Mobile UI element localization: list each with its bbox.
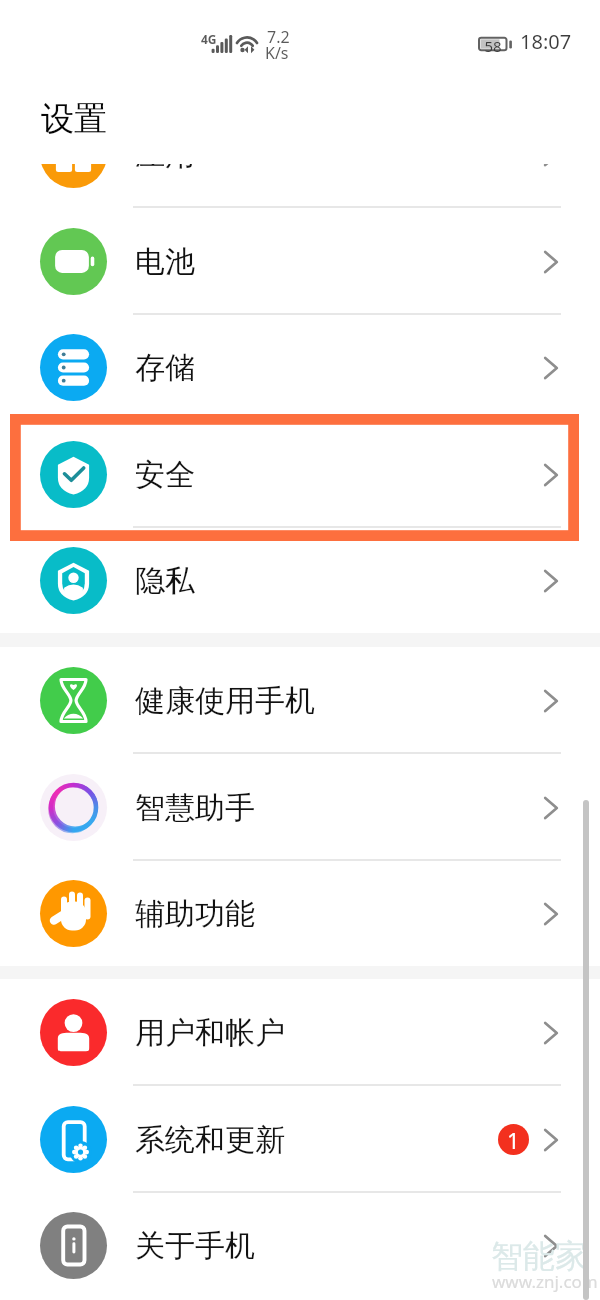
- staticText: 系统和更新: [135, 1121, 285, 1159]
- staticText: www.znj.com: [492, 1270, 598, 1293]
- staticText: 应用: [135, 164, 195, 174]
- other: 智慧助手: [541, 794, 565, 822]
- button[interactable]: 安全: [0, 421, 600, 528]
- other: 电池: [541, 248, 565, 276]
- staticText: 隐私: [135, 562, 195, 600]
- button[interactable]: 健康使用手机: [0, 647, 600, 754]
- staticText: 辅助功能: [135, 895, 255, 933]
- staticText: 智能家: [491, 1236, 587, 1276]
- other: 辅助功能: [541, 900, 565, 928]
- button[interactable]: 关于手机: [0, 1192, 600, 1299]
- staticText: 4G: [201, 31, 217, 47]
- staticText: 1: [507, 1125, 520, 1155]
- button[interactable]: 辅助功能: [0, 860, 600, 966]
- staticText: 存储: [135, 349, 195, 387]
- staticText: 关于手机: [135, 1227, 255, 1265]
- staticText: K/s: [265, 42, 289, 64]
- staticText: 用户和帐户: [135, 1014, 285, 1052]
- staticText: 18:07: [520, 28, 572, 55]
- button[interactable]: 隐私: [0, 527, 600, 633]
- other: 应用: [541, 164, 565, 169]
- button[interactable]: 用户和帐户: [0, 979, 600, 1086]
- button[interactable]: 应用: [0, 164, 600, 208]
- other: 健康使用手机: [541, 687, 565, 715]
- button[interactable]: 智慧助手: [0, 754, 600, 861]
- staticText: 7.2: [267, 26, 290, 48]
- button[interactable]: 存储: [0, 314, 600, 421]
- staticText: 智慧助手: [135, 789, 255, 827]
- other: 存储: [541, 354, 565, 382]
- other: 安全: [541, 461, 565, 489]
- button[interactable]: 电池: [0, 208, 600, 315]
- staticText: 电池: [135, 243, 195, 281]
- staticText: 安全: [135, 456, 195, 494]
- other: 用户和帐户: [541, 1019, 565, 1047]
- other: 系统和更新: [541, 1126, 565, 1154]
- staticText: 健康使用手机: [135, 682, 315, 720]
- other: 关于手机: [541, 1232, 565, 1260]
- other: 隐私: [541, 567, 565, 595]
- staticText: 58: [480, 36, 506, 56]
- button[interactable]: 系统和更新: [0, 1086, 600, 1193]
- staticText: 设置: [41, 98, 107, 140]
